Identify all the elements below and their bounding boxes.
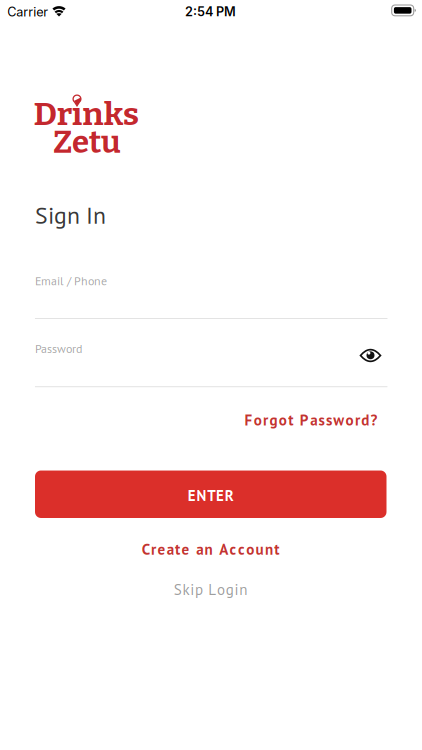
button[interactable]: E bbox=[35, 470, 386, 518]
staticText: t bbox=[175, 539, 180, 559]
staticText: u bbox=[256, 539, 264, 559]
staticText: t bbox=[288, 410, 293, 430]
staticText: w bbox=[333, 410, 344, 430]
staticText: E bbox=[216, 486, 224, 505]
staticText: P bbox=[300, 410, 309, 430]
staticText: n bbox=[204, 539, 212, 559]
staticText: a bbox=[196, 539, 203, 559]
staticText: s bbox=[326, 410, 332, 430]
staticText: e bbox=[181, 539, 189, 559]
staticText: o bbox=[217, 580, 225, 599]
staticText: Sign In bbox=[35, 199, 106, 230]
staticText: N bbox=[196, 486, 206, 505]
staticText: i bbox=[190, 580, 194, 599]
button[interactable]: S bbox=[174, 580, 247, 599]
button[interactable]: Show password bbox=[357, 345, 383, 365]
staticText: p bbox=[195, 580, 203, 599]
staticText: ? bbox=[371, 410, 378, 430]
staticText: g bbox=[269, 410, 277, 430]
staticText: A bbox=[219, 539, 228, 559]
staticText: c bbox=[229, 539, 236, 559]
staticText: 2:54 PM bbox=[185, 4, 236, 19]
staticText: i bbox=[234, 580, 238, 599]
staticText: a bbox=[167, 539, 174, 559]
button[interactable]: F bbox=[244, 410, 378, 430]
staticText: k bbox=[182, 580, 189, 599]
staticText: s bbox=[318, 410, 324, 430]
staticText: Password bbox=[35, 341, 82, 356]
staticText: o bbox=[246, 539, 254, 559]
staticText: C bbox=[142, 539, 150, 559]
staticText: Drinks bbox=[37, 96, 136, 133]
staticText: E bbox=[188, 486, 196, 505]
staticText: t bbox=[274, 539, 279, 559]
button[interactable]: C bbox=[142, 539, 279, 559]
staticText: n bbox=[265, 539, 273, 559]
staticText: o bbox=[279, 410, 287, 430]
staticText: d bbox=[361, 410, 369, 430]
staticText: S bbox=[174, 580, 182, 599]
staticText: L bbox=[208, 580, 216, 599]
staticText: c bbox=[238, 539, 245, 559]
staticText: T bbox=[207, 486, 215, 505]
staticText: R bbox=[225, 486, 234, 505]
staticText: r bbox=[355, 410, 360, 430]
staticText: F bbox=[244, 410, 252, 430]
staticText: r bbox=[151, 539, 156, 559]
staticText: Carrier bbox=[7, 4, 48, 19]
staticText: e bbox=[157, 539, 165, 559]
staticText: g bbox=[226, 580, 234, 599]
staticText: n bbox=[239, 580, 247, 599]
staticText: Email / Phone bbox=[35, 273, 107, 289]
staticText: r bbox=[263, 410, 268, 430]
staticText: Zetu bbox=[53, 124, 121, 161]
staticText: o bbox=[254, 410, 262, 430]
staticText: a bbox=[310, 410, 317, 430]
staticText: o bbox=[346, 410, 354, 430]
